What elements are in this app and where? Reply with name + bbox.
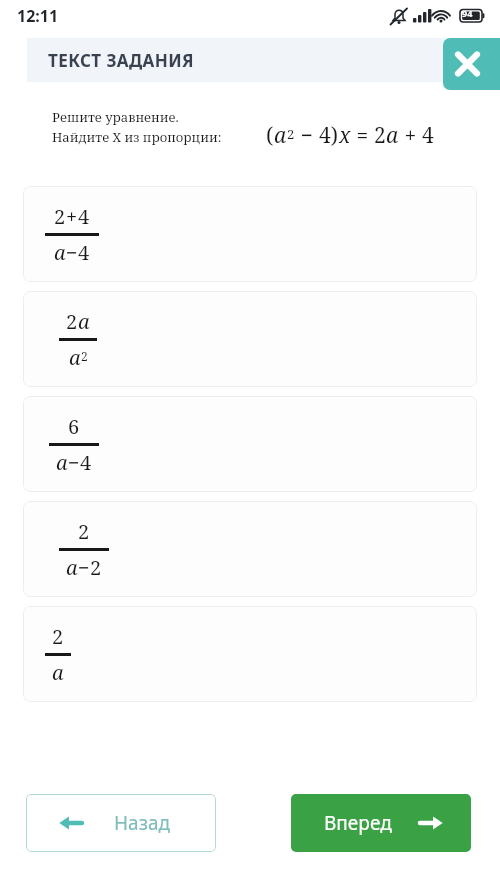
staticText: 2 xyxy=(52,623,64,650)
button[interactable]: Close xyxy=(443,38,500,90)
button[interactable]: 2 xyxy=(23,606,477,702)
staticText: a xyxy=(274,121,287,150)
staticText: 4) xyxy=(319,121,339,150)
staticText: + xyxy=(399,121,422,150)
staticText: a xyxy=(66,554,78,581)
staticText: a xyxy=(56,449,68,476)
staticText: 2 xyxy=(66,308,78,335)
staticText: = xyxy=(351,121,374,150)
staticText: a xyxy=(52,659,64,686)
staticText: 12:11 xyxy=(17,5,59,27)
staticText: 94 xyxy=(462,7,473,19)
staticText: 4 xyxy=(78,239,90,266)
staticText: 2 xyxy=(78,518,90,545)
button[interactable]: Вперед xyxy=(291,794,471,852)
staticText: 4 xyxy=(80,449,92,476)
button[interactable]: 2 xyxy=(23,291,477,387)
button[interactable]: ТЕКСТ ЗАДАНИЯ xyxy=(27,38,445,82)
staticText: 2 xyxy=(81,348,88,364)
staticText: − xyxy=(78,554,90,581)
staticText: − xyxy=(68,449,80,476)
button[interactable]: 2 xyxy=(23,501,477,597)
staticText: 4 xyxy=(78,203,90,230)
button[interactable]: Назад xyxy=(26,794,216,852)
staticText: Вперед xyxy=(324,810,392,836)
button[interactable]: 6 xyxy=(23,396,477,492)
staticText: Решите уравнение. xyxy=(52,108,179,126)
button[interactable]: 2 xyxy=(23,186,477,282)
staticText: a xyxy=(54,239,66,266)
staticText: 2 xyxy=(90,554,102,581)
staticText: x xyxy=(339,121,351,150)
staticText: 6 xyxy=(68,413,80,440)
staticText: Найдите X из пропорции: xyxy=(52,128,222,146)
staticText: a xyxy=(78,308,90,335)
staticText: 2 xyxy=(374,121,386,150)
staticText: − xyxy=(295,121,319,150)
staticText: ТЕКСТ ЗАДАНИЯ xyxy=(48,49,195,72)
staticText: − xyxy=(66,239,78,266)
staticText: ( xyxy=(266,121,274,150)
staticText: a xyxy=(386,121,399,150)
staticText: + xyxy=(66,203,78,230)
staticText: Назад xyxy=(114,810,171,836)
staticText: 4 xyxy=(422,121,434,150)
staticText: a xyxy=(69,344,81,371)
staticText: 2 xyxy=(54,203,66,230)
staticText: 2 xyxy=(287,125,295,143)
